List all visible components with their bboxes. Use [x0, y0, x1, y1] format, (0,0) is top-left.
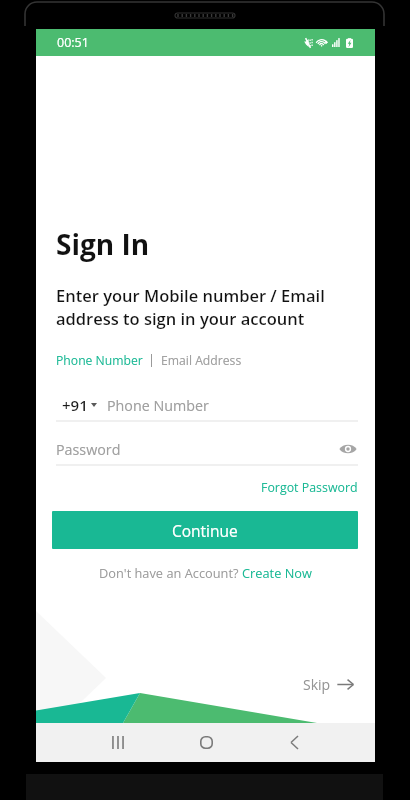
button[interactable]: +91 — [56, 395, 97, 415]
button[interactable]: Create Now — [242, 564, 312, 581]
staticText: Create Now — [242, 564, 312, 581]
button[interactable]: Recent apps — [74, 723, 162, 762]
staticText: Continue — [172, 520, 238, 541]
staticText: Forgot Password — [261, 479, 358, 496]
staticText: Enter your Mobile number / Email address… — [56, 284, 325, 330]
staticText: Don't have an Account? — [99, 564, 242, 581]
button[interactable]: Continue — [52, 511, 358, 549]
staticText: 00:51 — [57, 34, 89, 51]
staticText: +91 — [62, 395, 88, 415]
staticText: Password — [56, 440, 121, 459]
staticText: Skip — [303, 675, 331, 694]
button[interactable]: Email Address — [161, 352, 242, 369]
button[interactable]: Forgot Password — [261, 479, 358, 496]
button[interactable]: Show password — [338, 439, 358, 459]
staticText: Sign In — [56, 225, 150, 263]
button[interactable]: Skip — [303, 675, 354, 694]
button[interactable]: Phone Number — [56, 352, 143, 369]
staticText: Email Address — [161, 352, 242, 369]
staticText: Phone Number — [107, 396, 209, 415]
button[interactable]: Home — [162, 723, 250, 762]
staticText: Phone Number — [56, 352, 143, 369]
button[interactable]: Back — [250, 723, 338, 762]
